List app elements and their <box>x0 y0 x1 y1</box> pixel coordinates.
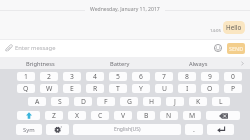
button[interactable]: 3 <box>63 72 81 81</box>
button[interactable]: Shift <box>17 111 40 120</box>
staticText: P <box>231 84 236 93</box>
button[interactable]: Emoji <box>212 42 224 54</box>
staticText: N <box>166 111 172 120</box>
button[interactable]: Always <box>159 57 238 70</box>
button[interactable]: Backspace <box>206 111 240 120</box>
button[interactable]: 1 <box>17 72 35 81</box>
staticText: S <box>58 97 62 106</box>
button[interactable]: R <box>86 84 104 93</box>
staticText: English(US) <box>114 126 141 133</box>
button[interactable]: Sym <box>16 124 42 135</box>
staticText: 14:05 <box>210 27 221 33</box>
button[interactable]: A <box>28 97 46 106</box>
staticText: Y <box>139 84 143 93</box>
staticText: J <box>174 97 176 106</box>
button[interactable]: 4 <box>86 72 104 81</box>
staticText: L <box>219 97 223 106</box>
staticText: G <box>127 97 132 106</box>
button[interactable]: Z <box>45 111 63 120</box>
staticText: T <box>116 84 120 93</box>
button[interactable]: Q <box>17 84 35 93</box>
staticText: M <box>189 111 196 120</box>
staticText: Hello <box>226 23 242 32</box>
staticText: 6 <box>139 72 143 81</box>
button[interactable]: O <box>201 84 219 93</box>
button[interactable]: 5 <box>109 72 127 81</box>
staticText: V <box>121 111 126 120</box>
staticText: B <box>144 111 149 120</box>
staticText: . <box>193 125 195 135</box>
staticText: Brightness <box>26 60 55 68</box>
button[interactable]: I <box>178 84 196 93</box>
staticText: A <box>35 97 40 106</box>
button[interactable]: J <box>166 97 184 106</box>
button[interactable]: 6 <box>132 72 150 81</box>
button[interactable]: S <box>51 97 69 106</box>
button[interactable]: Battery <box>80 57 159 70</box>
staticText: U <box>162 84 167 93</box>
button[interactable]: N <box>160 111 178 120</box>
staticText: 5 <box>116 72 120 81</box>
button[interactable]: L <box>212 97 230 106</box>
staticText: Battery <box>110 60 130 68</box>
button[interactable]: English(US) <box>73 124 181 135</box>
staticText: O <box>207 84 213 93</box>
button[interactable]: K <box>189 97 207 106</box>
button[interactable]: B <box>137 111 155 120</box>
staticText: K <box>196 97 201 106</box>
staticText: Z <box>52 111 56 120</box>
staticText: 7 <box>162 72 166 81</box>
button[interactable]: . <box>185 124 203 135</box>
staticText: 0 <box>231 72 235 81</box>
button[interactable]: Brightness <box>0 57 80 70</box>
button[interactable]: Keyboard settings <box>46 124 69 135</box>
staticText: C <box>98 111 103 120</box>
button[interactable]: SEND <box>227 43 245 54</box>
staticText: X <box>75 111 79 120</box>
button[interactable]: Attach file <box>3 43 14 54</box>
staticText: 4 <box>93 72 97 81</box>
staticText: 3 <box>70 72 74 81</box>
button[interactable]: Hello <box>223 21 245 34</box>
button[interactable]: D <box>74 97 92 106</box>
button[interactable]: E <box>63 84 81 93</box>
staticText: F <box>104 97 108 106</box>
staticText: Sym <box>23 126 35 134</box>
staticText: 1 <box>24 72 28 81</box>
button[interactable]: W <box>40 84 58 93</box>
button[interactable]: 9 <box>201 72 219 81</box>
staticText: H <box>149 97 155 106</box>
button[interactable]: 0 <box>224 72 242 81</box>
staticText: I <box>186 84 189 93</box>
staticText: 2 <box>47 72 51 81</box>
staticText: Always <box>189 60 208 68</box>
staticText: 8 <box>185 72 189 81</box>
staticText: Enter message <box>15 44 56 52</box>
button[interactable]: P <box>224 84 242 93</box>
staticText: SEND <box>229 45 244 52</box>
button[interactable]: X <box>68 111 86 120</box>
button[interactable]: M <box>183 111 201 120</box>
button[interactable]: 7 <box>155 72 173 81</box>
button[interactable]: T <box>109 84 127 93</box>
button[interactable]: F <box>97 97 115 106</box>
button[interactable]: H <box>143 97 161 106</box>
staticText: 9 <box>208 72 212 81</box>
button[interactable]: Enter <box>207 124 234 135</box>
button[interactable]: Y <box>132 84 150 93</box>
button[interactable]: 8 <box>178 72 196 81</box>
button[interactable]: V <box>114 111 132 120</box>
staticText: Wednesday, January 11, 2017 <box>90 6 160 13</box>
staticText: W <box>46 84 53 93</box>
button[interactable]: U <box>155 84 173 93</box>
staticText: E <box>70 84 74 93</box>
staticText: R <box>93 84 98 93</box>
button[interactable]: G <box>120 97 138 106</box>
button[interactable]: C <box>91 111 109 120</box>
staticText: Q <box>23 84 29 93</box>
button[interactable]: 2 <box>40 72 58 81</box>
staticText: D <box>81 97 86 106</box>
